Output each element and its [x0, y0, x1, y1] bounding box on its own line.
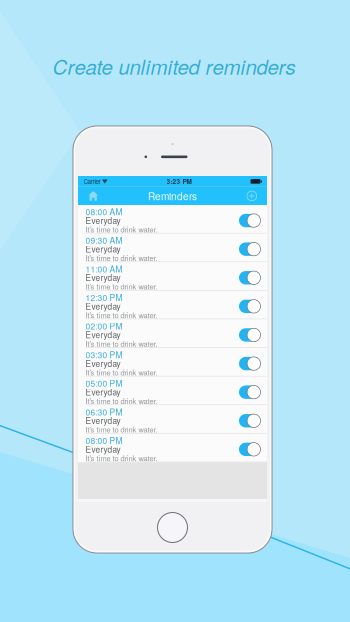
staticText: Everyday [86, 243, 121, 255]
staticText: 02:00 PM [86, 320, 123, 332]
button[interactable]: 05:00 PM [78, 377, 267, 405]
staticText: Carrier [84, 177, 101, 186]
staticText: Everyday [86, 272, 121, 283]
button[interactable]: Home [81, 187, 105, 205]
staticText: 03:30 PM [86, 348, 123, 360]
staticText: It's time to drink water. [86, 453, 158, 463]
staticText: Everyday [86, 214, 121, 226]
staticText: It's time to drink water. [86, 252, 158, 263]
staticText: 08:00 AM [86, 205, 123, 217]
staticText: It's time to drink water. [86, 310, 158, 320]
staticText: 08:00 PM [86, 434, 123, 446]
staticText: 06:30 PM [86, 406, 123, 418]
staticText: 3:23 PM [166, 177, 191, 186]
button[interactable]: 02:00 PM [78, 319, 267, 348]
button[interactable]: 12:30 PM [78, 291, 267, 319]
button[interactable]: 08:00 PM [78, 434, 267, 462]
button[interactable]: 11:00 AM [78, 262, 267, 291]
staticText: It's time to drink water. [86, 367, 158, 377]
staticText: Everyday [86, 386, 121, 398]
staticText: Everyday [86, 443, 121, 455]
staticText: It's time to drink water. [86, 424, 158, 435]
staticText: It's time to drink water. [86, 338, 158, 349]
staticText: It's time to drink water. [86, 281, 158, 292]
staticText: Create unlimited reminders [52, 51, 295, 80]
staticText: 05:00 PM [86, 377, 123, 389]
staticText: It's time to drink water. [86, 395, 158, 406]
button[interactable]: Add reminder [240, 187, 264, 205]
staticText: Everyday [86, 415, 121, 426]
button[interactable]: 03:30 PM [78, 348, 267, 377]
staticText: It's time to drink water. [86, 224, 158, 234]
staticText: 09:30 AM [86, 234, 123, 246]
staticText: 12:30 PM [86, 291, 123, 303]
button[interactable]: 06:30 PM [78, 405, 267, 434]
staticText: Everyday [86, 357, 121, 369]
staticText: 11:00 AM [86, 263, 123, 275]
button[interactable]: 08:00 AM [78, 205, 267, 234]
staticText: Everyday [86, 300, 121, 312]
staticText: Everyday [86, 329, 121, 341]
button[interactable]: 09:30 AM [78, 234, 267, 262]
staticText: Reminders [148, 189, 197, 203]
